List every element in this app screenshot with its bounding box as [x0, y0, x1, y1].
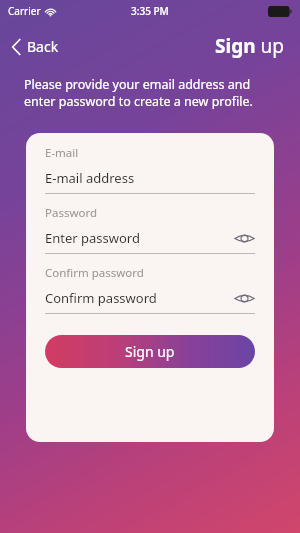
staticText: Password — [45, 205, 98, 221]
staticText: 3:35 PM — [131, 4, 169, 18]
button[interactable]: Sign up — [215, 33, 300, 59]
staticText: Sign up — [215, 33, 284, 59]
staticText: E-mail — [45, 145, 79, 161]
button[interactable]: Sign up — [45, 335, 255, 368]
button[interactable]: Back — [0, 33, 71, 60]
staticText: Carrier — [8, 4, 41, 18]
staticText: Confirm password — [45, 265, 144, 281]
staticText: Sign up — [125, 342, 175, 361]
staticText: Enter password — [45, 229, 140, 247]
staticText: Confirm password — [45, 289, 157, 307]
button[interactable]: Show password — [234, 292, 255, 305]
button[interactable]: Show password — [234, 232, 255, 245]
staticText: E-mail address — [45, 169, 135, 187]
staticText: Back — [27, 37, 59, 56]
button[interactable]: E-mail — [26, 145, 274, 194]
button[interactable]: Confirm password — [26, 265, 274, 314]
button[interactable]: Password — [26, 205, 274, 254]
staticText: Please provide your email address and en… — [24, 76, 282, 110]
